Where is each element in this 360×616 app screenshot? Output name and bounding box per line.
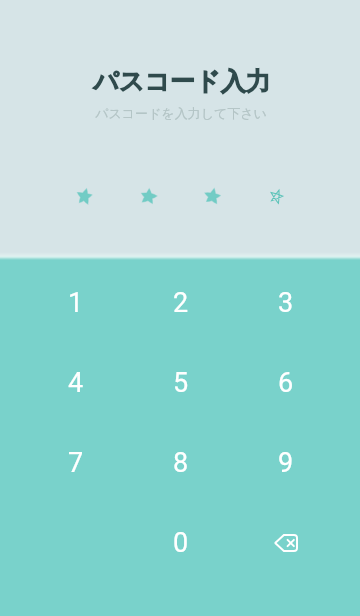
button[interactable]: 6 xyxy=(233,343,338,423)
staticText: 8 xyxy=(173,447,189,479)
staticText: パスコード入力 xyxy=(93,66,271,97)
button[interactable]: 3 xyxy=(233,263,338,343)
staticText: 4 xyxy=(68,367,84,399)
staticText: 5 xyxy=(173,367,189,399)
button[interactable]: 8 xyxy=(128,423,233,503)
button[interactable]: 0 xyxy=(128,503,233,583)
staticText: 6 xyxy=(278,367,294,399)
staticText: 9 xyxy=(278,447,294,479)
button[interactable]: 9 xyxy=(233,423,338,503)
button[interactable]: 5 xyxy=(128,343,233,423)
staticText: 7 xyxy=(68,447,84,479)
staticText: 2 xyxy=(173,287,189,319)
button[interactable]: Delete xyxy=(233,503,338,583)
staticText: 3 xyxy=(278,287,294,319)
staticText: 0 xyxy=(173,527,189,559)
button[interactable]: 4 xyxy=(24,343,128,423)
staticText: パスコードを入力して下さい xyxy=(95,105,267,121)
staticText: 1 xyxy=(68,287,84,319)
button[interactable]: 1 xyxy=(24,263,128,343)
button[interactable]: 2 xyxy=(128,263,233,343)
button[interactable]: 7 xyxy=(24,423,128,503)
